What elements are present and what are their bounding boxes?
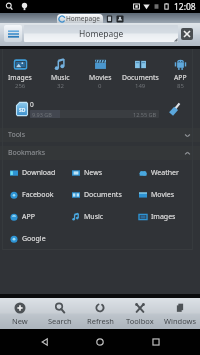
staticText: Images: [8, 73, 32, 82]
staticText: 0: [98, 82, 102, 90]
staticText: SD: [19, 107, 26, 114]
button[interactable]: Refresh: [80, 298, 120, 329]
button[interactable]: Windows: [160, 298, 200, 329]
staticText: Music: [84, 212, 104, 222]
staticText: Images: [151, 212, 176, 222]
staticText: Facebook: [22, 190, 54, 200]
staticText: 32: [57, 82, 64, 90]
button[interactable]: Search: [40, 298, 80, 329]
button[interactable]: Clean: [168, 102, 182, 116]
button[interactable]: Documents: [120, 55, 160, 93]
staticText: News: [84, 168, 102, 178]
staticText: Movies: [151, 190, 175, 200]
staticText: Tools: [8, 130, 26, 140]
other: Search: [5, 2, 14, 11]
button[interactable]: Recents: [145, 331, 167, 353]
button[interactable]: Music: [40, 55, 80, 93]
staticText: Download: [22, 168, 56, 178]
staticText: Homepage: [79, 28, 124, 40]
staticText: Movies: [89, 73, 112, 82]
button[interactable]: Toolbox: [120, 298, 160, 329]
staticText: 0: [30, 100, 34, 109]
button[interactable]: Download: [10, 162, 68, 184]
button[interactable]: APP: [160, 55, 200, 93]
staticText: Music: [51, 73, 70, 82]
staticText: Weather: [151, 168, 179, 178]
staticText: 12.55 GB: [133, 111, 157, 118]
staticText: APP: [22, 212, 35, 222]
staticText: 12:08: [174, 1, 196, 13]
staticText: Toolbox: [126, 316, 154, 326]
staticText: 85: [177, 82, 184, 90]
button[interactable]: Weather: [139, 162, 197, 184]
staticText: New: [12, 316, 28, 326]
staticText: 149: [135, 82, 146, 90]
button[interactable]: SD: [16, 99, 182, 119]
button[interactable]: Homepage: [57, 14, 103, 23]
staticText: Homepage: [66, 14, 100, 23]
staticText: Refresh: [87, 316, 114, 326]
button[interactable]: Google: [10, 228, 68, 250]
staticText: Documents: [122, 73, 159, 82]
button[interactable]: Windows: [116, 15, 124, 23]
staticText: Google: [22, 234, 46, 244]
button[interactable]: Back: [34, 331, 56, 353]
button[interactable]: Bookmarks: [0, 146, 200, 160]
button[interactable]: New tab: [106, 15, 113, 23]
button[interactable]: Images: [0, 55, 40, 93]
button[interactable]: Close: [181, 28, 193, 40]
button[interactable]: Movies: [139, 184, 197, 206]
staticText: Search: [48, 316, 72, 326]
staticText: Windows: [164, 316, 197, 326]
button[interactable]: News: [72, 162, 130, 184]
button[interactable]: Documents: [72, 184, 130, 206]
staticText: Bookmarks: [8, 148, 46, 158]
button[interactable]: Home: [89, 331, 111, 353]
button[interactable]: Homepage: [24, 25, 178, 42]
button[interactable]: New: [0, 298, 40, 329]
button[interactable]: Movies: [80, 55, 120, 93]
button[interactable]: Images: [139, 206, 197, 228]
staticText: APP: [174, 73, 187, 82]
button[interactable]: Menu: [4, 25, 22, 42]
staticText: 256: [15, 82, 26, 90]
button[interactable]: Facebook: [10, 184, 68, 206]
button[interactable]: Tools: [0, 128, 200, 142]
button[interactable]: Music: [72, 206, 130, 228]
button[interactable]: APP: [10, 206, 68, 228]
staticText: 9.93 GB: [32, 111, 52, 118]
staticText: Documents: [84, 190, 122, 200]
